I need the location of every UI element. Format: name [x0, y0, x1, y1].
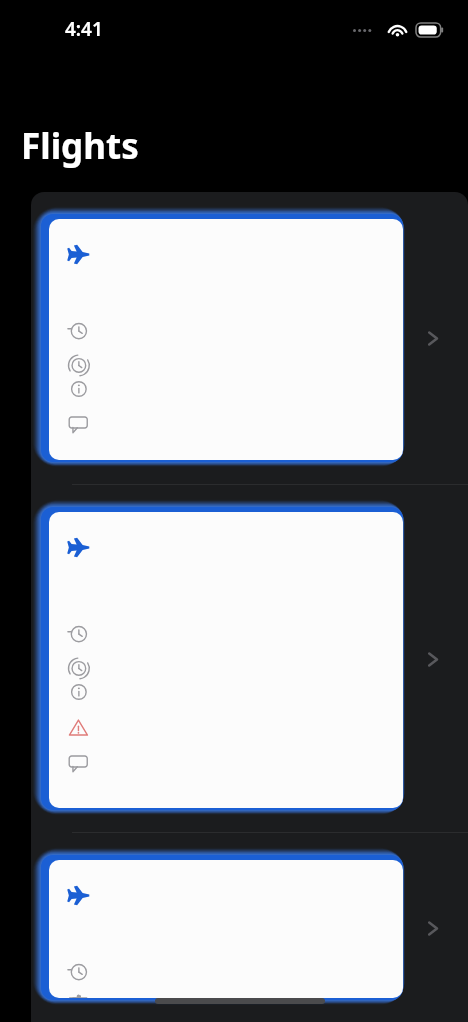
- other: Open flight details: [416, 912, 448, 944]
- button[interactable]: Open flight details: [31, 833, 468, 1022]
- other: Open flight details: [416, 322, 448, 354]
- button[interactable]: Open flight details: [31, 192, 468, 484]
- other: Open flight details: [416, 643, 448, 675]
- button[interactable]: Open flight details: [31, 485, 468, 832]
- staticText: Flights: [21, 122, 139, 170]
- staticText: 4:41: [65, 16, 103, 42]
